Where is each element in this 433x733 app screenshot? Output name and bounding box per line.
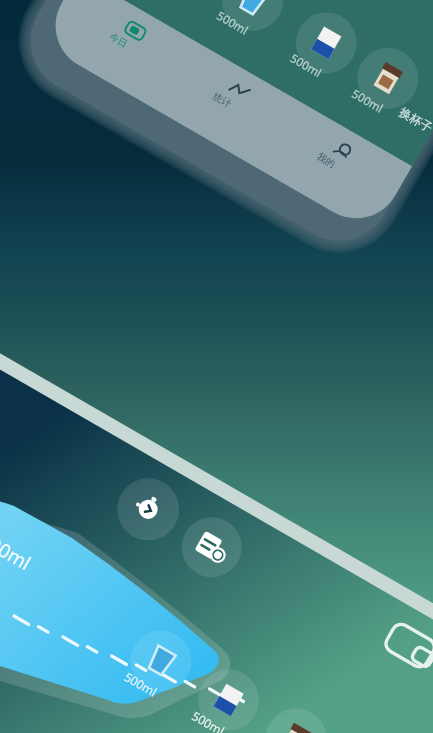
button[interactable]: Water reminder app preview [0, 0, 433, 733]
